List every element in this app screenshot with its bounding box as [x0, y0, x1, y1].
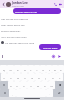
- staticText: D: [17, 76, 19, 79]
- staticText: Sounds good to me: [15, 10, 37, 13]
- button[interactable]: Call: [53, 2, 58, 7]
- button[interactable]: W: [7, 65, 14, 73]
- staticText: project deadline?: [1, 29, 21, 32]
- button[interactable]: U: [40, 65, 46, 73]
- staticText: B: [37, 84, 39, 87]
- staticText: Y: [36, 68, 38, 71]
- staticText: P: [60, 68, 62, 71]
- button[interactable]: Symbols: [0, 89, 9, 97]
- button[interactable]: Q: [0, 65, 7, 73]
- staticText: Q: [3, 68, 5, 71]
- staticText: Hey are we still meeting: [1, 17, 28, 20]
- staticText: X: [16, 84, 18, 87]
- staticText: L: [59, 76, 61, 79]
- staticText: Thanks dude: [43, 46, 58, 49]
- staticText: J: [45, 76, 46, 79]
- staticText: Jordan Lee: [12, 1, 28, 5]
- button[interactable]: D: [14, 73, 21, 81]
- button[interactable]: M: [48, 81, 55, 89]
- button[interactable]: Z: [8, 81, 14, 89]
- staticText: .: [49, 92, 50, 95]
- button[interactable]: Send: [57, 54, 62, 59]
- button[interactable]: T: [28, 65, 34, 73]
- staticText: N: [44, 84, 46, 87]
- staticText: A: [3, 76, 5, 79]
- button[interactable]: H: [35, 73, 42, 81]
- button[interactable]: P: [58, 65, 64, 73]
- staticText: S: [10, 76, 12, 79]
- button[interactable]: Sounds good to me: [13, 8, 61, 14]
- button[interactable]: J: [42, 73, 49, 81]
- button[interactable]: Thanks dude: [39, 44, 61, 50]
- button[interactable]: I: [46, 65, 52, 73]
- button[interactable]: F: [21, 73, 28, 81]
- button[interactable]: C: [20, 81, 27, 89]
- staticText: I: [49, 68, 50, 71]
- staticText: E: [17, 68, 19, 71]
- button[interactable]: L: [56, 73, 63, 81]
- button[interactable]: Enter: [53, 89, 64, 97]
- button[interactable]: Backspace: [55, 81, 64, 89]
- button[interactable]: S: [7, 73, 14, 81]
- staticText: No worries take your time: [5, 41, 35, 44]
- button[interactable]: A: [1, 73, 7, 81]
- staticText: W: [9, 68, 12, 71]
- staticText: later today about the: [1, 23, 25, 26]
- button[interactable]: G: [28, 73, 35, 81]
- staticText: V: [30, 84, 32, 87]
- button[interactable]: Y: [34, 65, 40, 73]
- staticText: Yes I will be there soon: [1, 35, 27, 38]
- button[interactable]: Shift: [0, 81, 8, 89]
- button[interactable]: N: [41, 81, 48, 89]
- staticText: F: [24, 76, 26, 79]
- button[interactable]: V: [27, 81, 34, 89]
- staticText: C: [23, 84, 25, 87]
- staticText: O: [54, 68, 56, 71]
- staticText: U: [42, 68, 44, 71]
- button[interactable]: O: [52, 65, 58, 73]
- button[interactable]: Attach: [51, 54, 56, 59]
- staticText: M: [50, 84, 53, 87]
- button[interactable]: X: [14, 81, 20, 89]
- button[interactable]: B: [34, 81, 41, 89]
- button[interactable]: E: [14, 65, 21, 73]
- button[interactable]: Video call: [58, 2, 63, 7]
- button[interactable]: R: [21, 65, 28, 73]
- staticText: K: [52, 76, 54, 79]
- staticText: Online now: [12, 5, 24, 8]
- button[interactable]: Back: [1, 2, 6, 7]
- button[interactable]: K: [49, 73, 56, 81]
- staticText: R: [24, 68, 26, 71]
- staticText: H: [38, 76, 40, 79]
- staticText: G: [31, 76, 33, 79]
- staticText: T: [30, 68, 32, 71]
- staticText: Z: [10, 84, 12, 87]
